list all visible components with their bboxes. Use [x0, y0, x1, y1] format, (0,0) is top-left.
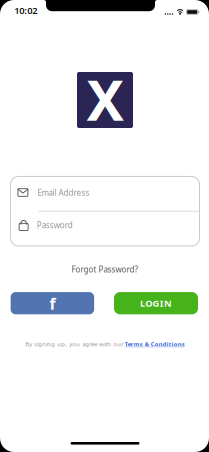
staticText: Forgot Password? — [71, 264, 137, 275]
button[interactable]: Sign in with Facebook — [11, 292, 94, 314]
staticText: Terms & Conditions — [125, 340, 185, 348]
staticText: Password — [37, 220, 73, 230]
staticText: f — [49, 293, 55, 314]
staticText: X — [86, 62, 124, 136]
staticText: By signing up, you agree with our — [25, 340, 123, 348]
button[interactable]: Email Address — [11, 177, 198, 210]
button[interactable]: LOGIN — [114, 292, 198, 314]
staticText: Email Address — [37, 187, 89, 198]
button[interactable]: Terms & Conditions — [125, 340, 185, 348]
staticText: LOGIN — [140, 297, 172, 309]
staticText: 10:02 — [14, 4, 37, 16]
button[interactable]: Forgot Password? — [71, 264, 137, 275]
button[interactable]: Password — [11, 212, 198, 245]
